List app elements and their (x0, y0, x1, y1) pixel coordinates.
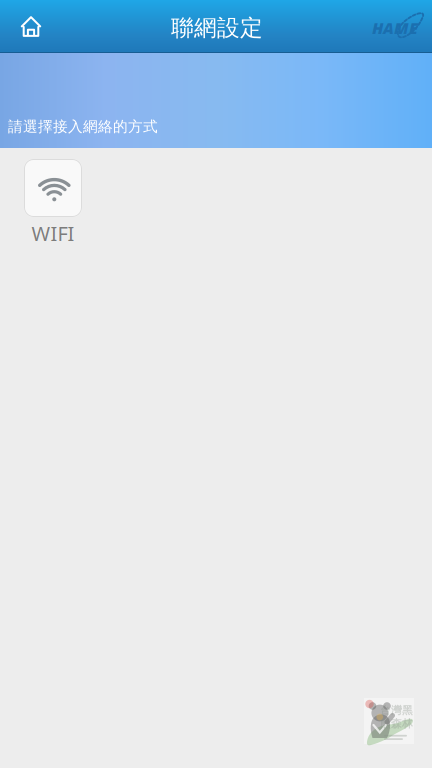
staticText: HAME (372, 17, 418, 39)
staticText: 熊森林 (380, 717, 413, 730)
staticText: 請選擇接入網絡的方式 (8, 117, 158, 135)
staticText: 台灣黑 (380, 704, 413, 717)
button[interactable]: WIFI (24, 159, 82, 247)
button[interactable]: Home (10, 0, 52, 53)
button[interactable]: HAME (371, 0, 429, 53)
staticText: WIFI (31, 220, 74, 247)
staticText: 聯網設定 (171, 14, 263, 42)
